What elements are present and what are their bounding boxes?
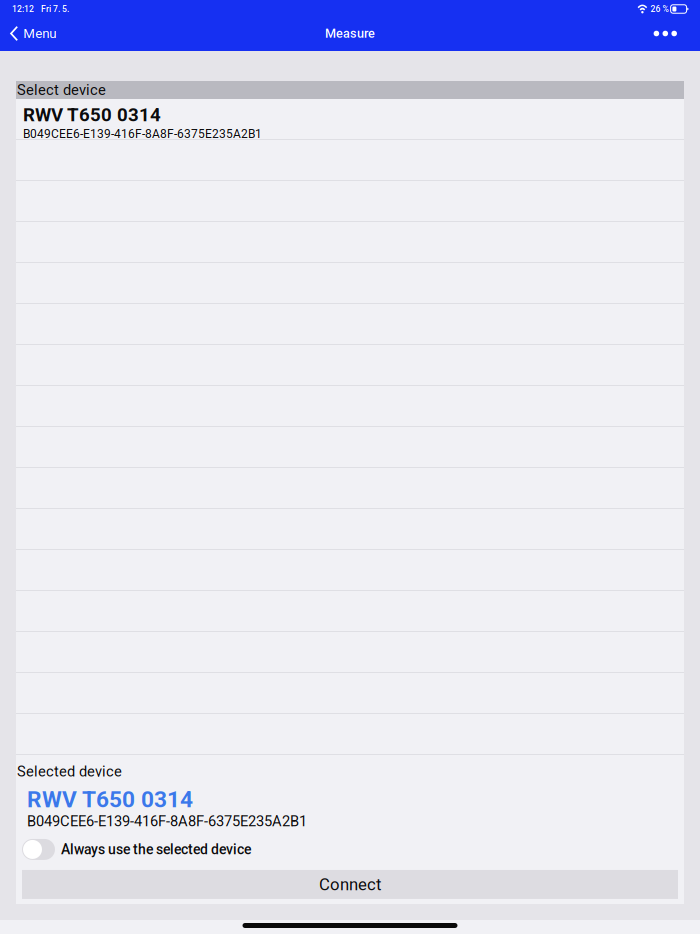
staticText: 26 % — [651, 4, 669, 14]
button[interactable]: RWV T650 0314 — [16, 99, 684, 139]
staticText: Menu — [23, 26, 56, 41]
staticText: RWV T650 0314 — [23, 104, 161, 126]
staticText: Selected device — [17, 763, 122, 780]
staticText: Fri 7. 5. — [41, 4, 69, 14]
staticText: 12:12 — [12, 4, 34, 14]
button[interactable]: More options — [642, 22, 700, 45]
button[interactable]: Menu — [0, 19, 64, 48]
staticText: Connect — [319, 875, 381, 894]
staticText: Measure — [325, 26, 375, 41]
button[interactable]: Always use the selected device — [16, 839, 251, 860]
staticText: B049CEE6-E139-416F-8A8F-6375E235A2B1 — [27, 813, 307, 830]
staticText: B049CEE6-E139-416F-8A8F-6375E235A2B1 — [23, 127, 262, 141]
staticText: Select device — [17, 81, 106, 99]
button[interactable]: Connect — [16, 870, 684, 899]
staticText: Always use the selected device — [61, 841, 251, 858]
staticText: RWV T650 0314 — [27, 786, 193, 813]
